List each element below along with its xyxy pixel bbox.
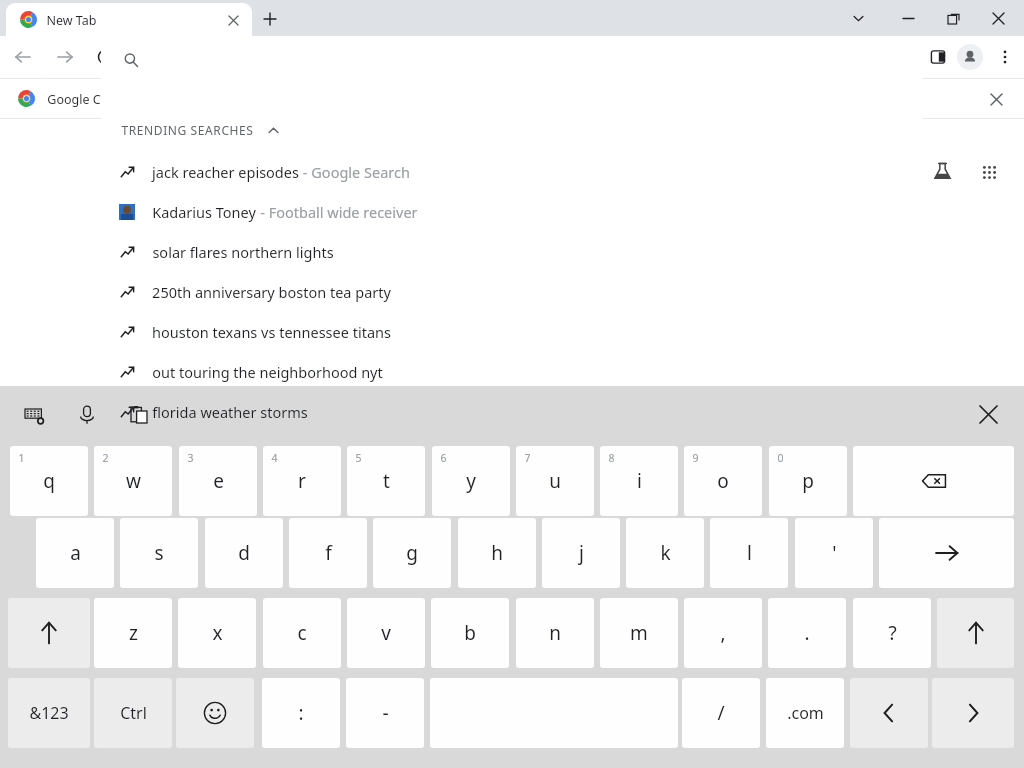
button[interactable]: m <box>600 598 678 668</box>
button[interactable]: houston texans vs tennessee titans <box>101 312 922 352</box>
button[interactable]: Dismiss <box>986 89 1006 109</box>
button[interactable]: b <box>431 598 509 668</box>
staticText: . <box>804 620 810 646</box>
button[interactable]: . <box>768 598 846 668</box>
button[interactable]: Voice input <box>74 402 100 428</box>
button[interactable]: Keyboard settings <box>22 402 48 428</box>
button[interactable]: c <box>263 598 341 668</box>
staticText: solar flares northern lights <box>152 242 334 262</box>
button[interactable]: 2 <box>94 446 172 516</box>
button[interactable]: Side panel <box>925 44 951 70</box>
button[interactable]: z <box>94 598 172 668</box>
staticText: / <box>717 700 725 726</box>
button[interactable]: 9 <box>684 446 762 516</box>
button[interactable]: next <box>932 678 1014 748</box>
button[interactable]: Ctrl <box>94 678 172 748</box>
button[interactable]: Window control <box>896 6 920 30</box>
button[interactable]: prev <box>850 678 928 748</box>
staticText: ? <box>888 620 897 646</box>
button[interactable]: Window control <box>986 6 1010 30</box>
button[interactable]: enter <box>879 518 1014 588</box>
button[interactable]: , <box>684 598 762 668</box>
button[interactable]: New Tab <box>6 3 252 36</box>
button[interactable]: Window control <box>846 6 870 30</box>
staticText: 5 <box>355 451 362 465</box>
staticText: l <box>747 540 752 566</box>
button[interactable]: s <box>120 518 198 588</box>
button[interactable]: 5 <box>347 446 425 516</box>
button[interactable]: New tab <box>258 7 282 31</box>
button[interactable]: 3 <box>179 446 257 516</box>
staticText: w <box>126 468 141 494</box>
button[interactable]: Forward <box>52 44 78 70</box>
button[interactable]: 8 <box>600 446 678 516</box>
button[interactable]: d <box>205 518 283 588</box>
button[interactable]: n <box>516 598 594 668</box>
button[interactable]: x <box>178 598 256 668</box>
button[interactable]: Kadarius Toney <box>101 192 922 232</box>
button[interactable]: - <box>346 678 424 748</box>
button[interactable]: solar flares northern lights <box>101 232 922 272</box>
staticText: e <box>213 468 224 494</box>
staticText: 250th anniversary boston tea party <box>152 282 391 302</box>
staticText: , <box>720 620 726 646</box>
button[interactable]: shiftR <box>937 598 1014 668</box>
button[interactable]: TRENDING SEARCHES <box>121 116 279 144</box>
button[interactable]: shiftL <box>8 598 90 668</box>
button[interactable]: &123 <box>8 678 90 748</box>
button[interactable]: Reload <box>92 44 118 70</box>
button[interactable]: Back <box>10 44 36 70</box>
button[interactable]: out touring the neighborhood nyt <box>101 352 922 392</box>
staticText: - Google Search <box>299 162 410 182</box>
button[interactable]: .com <box>766 678 844 748</box>
staticText: s <box>154 540 164 566</box>
staticText: out touring the neighborhood nyt <box>152 362 383 382</box>
button[interactable]: j <box>542 518 620 588</box>
staticText: f <box>325 540 332 566</box>
button[interactable]: g <box>373 518 451 588</box>
staticText: jack reacher episodes <box>152 162 299 182</box>
button[interactable]: v <box>347 598 425 668</box>
button[interactable]: h <box>458 518 536 588</box>
button[interactable]: Labs <box>930 159 954 183</box>
button[interactable]: : <box>262 678 340 748</box>
button[interactable]: a <box>36 518 114 588</box>
button[interactable]: Google apps <box>978 161 1000 183</box>
button[interactable]: ' <box>795 518 873 588</box>
staticText: 9 <box>692 451 699 465</box>
button[interactable]: Close tab <box>224 11 242 29</box>
button[interactable]: 4 <box>263 446 341 516</box>
staticText: m <box>630 620 648 646</box>
button[interactable]: 1 <box>10 446 88 516</box>
button[interactable]: Clipboard <box>126 402 152 428</box>
staticText: ' <box>832 540 837 566</box>
button[interactable]: ? <box>853 598 931 668</box>
button[interactable]: emoji <box>176 678 254 748</box>
button[interactable]: 250th anniversary boston tea party <box>101 272 922 312</box>
button[interactable]: Search <box>119 48 143 72</box>
button[interactable]: Window control <box>941 6 965 30</box>
button[interactable]: 7 <box>516 446 594 516</box>
button[interactable]: More options <box>992 44 1018 70</box>
button[interactable]: k <box>626 518 704 588</box>
button[interactable]: 0 <box>769 446 847 516</box>
staticText: 6 <box>440 451 447 465</box>
button[interactable]: Profile <box>957 44 983 70</box>
staticText: o <box>717 468 729 494</box>
staticText: &123 <box>29 702 69 724</box>
staticText: c <box>297 620 307 646</box>
button[interactable]: 6 <box>432 446 510 516</box>
button[interactable]: florida weather storms <box>101 392 922 432</box>
button[interactable]: Close keyboard <box>974 400 1002 428</box>
button[interactable]: / <box>682 678 760 748</box>
staticText: florida weather storms <box>152 402 308 422</box>
button[interactable]: f <box>289 518 367 588</box>
button[interactable]: l <box>710 518 788 588</box>
staticText: y <box>466 468 476 494</box>
staticText: 8 <box>608 451 615 465</box>
staticText: z <box>129 620 138 646</box>
button[interactable]: backspace <box>853 446 1014 516</box>
staticText: 7 <box>524 451 531 465</box>
button[interactable]: jack reacher episodes <box>101 152 922 192</box>
